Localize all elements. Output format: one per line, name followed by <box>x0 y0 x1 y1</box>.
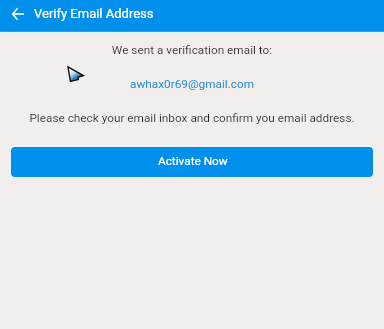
staticText: Verify Email Address <box>34 6 154 21</box>
button[interactable]: Activate Now <box>11 147 373 177</box>
staticText: Please check your email inbox and confir… <box>0 111 384 125</box>
staticText: We sent a verification email to: <box>0 43 384 57</box>
button[interactable]: Back <box>7 3 28 24</box>
staticText: Activate Now <box>158 154 228 168</box>
button[interactable]: awhax0r69@gmail.com <box>0 77 384 91</box>
